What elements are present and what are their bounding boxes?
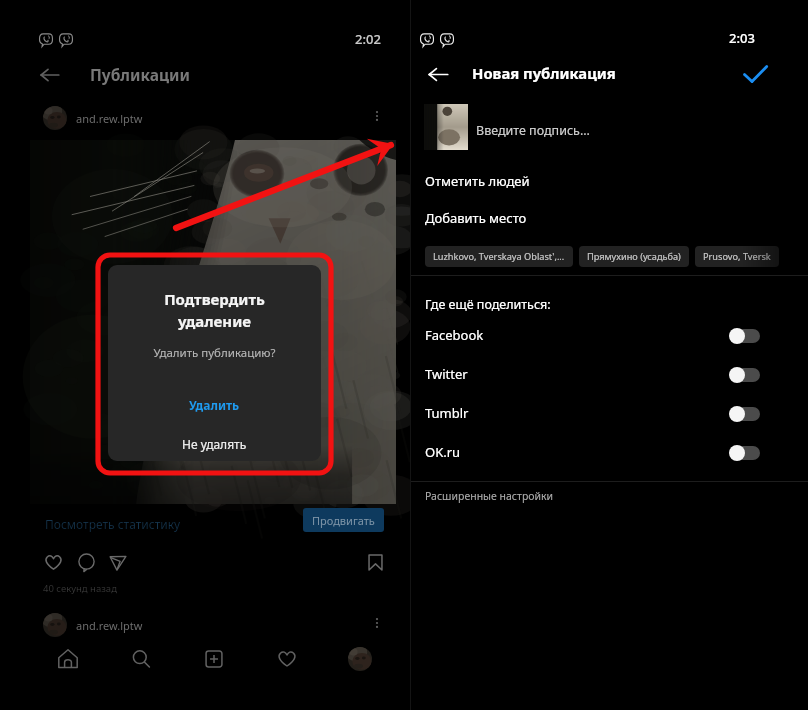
staticText: 40 секунд назад — [43, 582, 117, 595]
staticText: Удалить публикацию? — [108, 345, 321, 361]
button[interactable]: Добавить место — [411, 201, 808, 235]
staticText: Добавить место — [425, 209, 527, 227]
staticText: Прямухино (усадьба) — [587, 250, 681, 263]
staticText: Отметить людей — [425, 172, 530, 190]
button[interactable]: Activity — [250, 637, 323, 681]
button[interactable]: Удалить — [108, 391, 321, 419]
staticText: Tumblr — [425, 404, 469, 422]
staticText: Luzhkovo, Tverskaya Oblast',... — [433, 250, 565, 263]
staticText: Prusovo, Tversk — [703, 250, 771, 263]
button[interactable]: Save — [363, 550, 387, 574]
staticText: Расширенные настройки — [425, 489, 554, 503]
button[interactable]: Введите подпись... — [475, 121, 591, 140]
button[interactable]: Profile — [323, 637, 396, 681]
button[interactable]: Like — [41, 550, 65, 574]
staticText: OK.ru — [425, 443, 461, 461]
staticText: Где ещё поделиться: — [425, 296, 551, 313]
button[interactable]: Посмотреть статистику — [43, 514, 183, 534]
button[interactable]: More options — [364, 610, 390, 636]
button[interactable]: Home — [32, 637, 104, 681]
staticText: Twitter — [425, 365, 468, 383]
staticText: Удалить — [189, 397, 240, 413]
button[interactable]: Prusovo, Tversk — [695, 246, 779, 267]
staticText: Публикации — [90, 64, 190, 85]
button[interactable]: Отметить людей — [411, 164, 808, 198]
button[interactable]: Прямухино (усадьба) — [579, 246, 689, 267]
staticText: Продвигать — [312, 513, 375, 528]
button[interactable]: More options — [364, 103, 390, 129]
staticText: and.rew.lptw — [76, 111, 143, 126]
staticText: 2:02 — [355, 30, 381, 48]
staticText: Введите подпись... — [476, 122, 590, 139]
button[interactable]: Не удалять — [108, 430, 321, 458]
button[interactable]: Back — [34, 59, 66, 91]
button[interactable]: Create — [177, 637, 250, 681]
button[interactable]: Tumblr — [411, 396, 808, 430]
staticText: 2:03 — [729, 29, 755, 47]
button[interactable]: OK.ru — [411, 435, 808, 469]
button[interactable]: Продвигать — [303, 508, 384, 532]
button[interactable]: Luzhkovo, Tverskaya Oblast',... — [425, 246, 573, 267]
staticText: and.rew.lptw — [76, 618, 143, 633]
button[interactable]: Back — [421, 57, 455, 91]
staticText: Новая публикация — [472, 63, 616, 83]
button[interactable]: Comment — [74, 550, 98, 574]
button[interactable]: Search — [104, 637, 177, 681]
button[interactable]: Share post — [738, 57, 772, 91]
staticText: Не удалять — [182, 436, 247, 452]
staticText: Подтвердить удаление — [108, 289, 321, 332]
button[interactable]: Facebook — [411, 318, 808, 352]
button[interactable]: Twitter — [411, 357, 808, 391]
button[interactable]: Share — [106, 550, 130, 574]
staticText: Facebook — [425, 326, 484, 344]
staticText: Посмотреть статистику — [45, 516, 181, 532]
